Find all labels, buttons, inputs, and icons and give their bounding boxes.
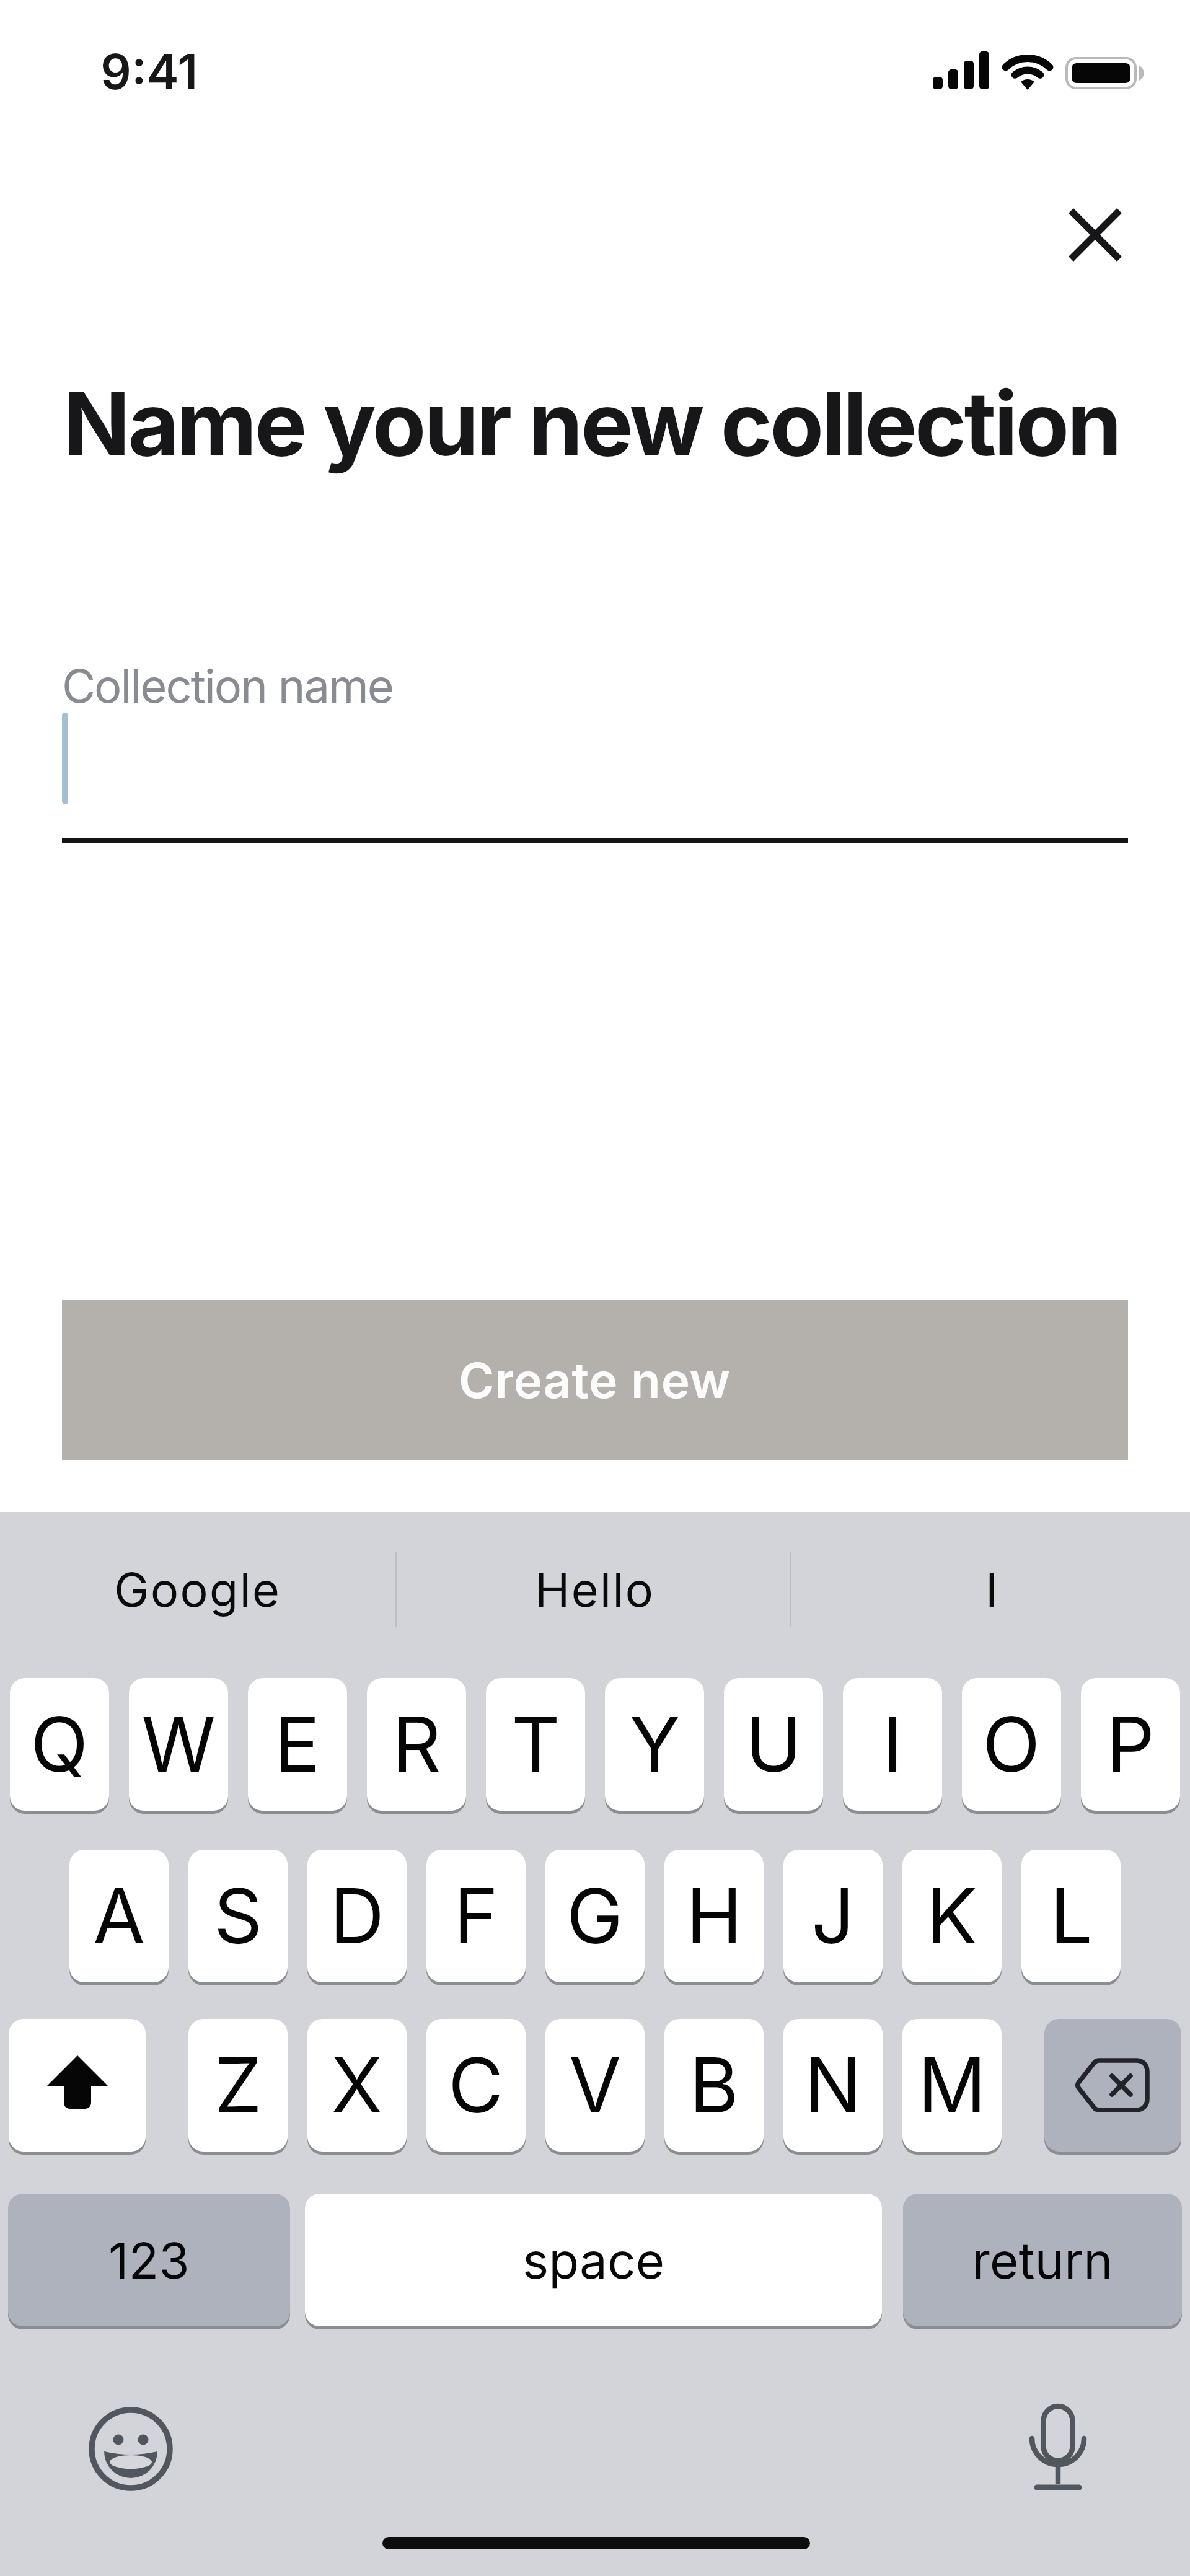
- staticText: 9:41: [100, 42, 198, 100]
- button[interactable]: F: [426, 1850, 526, 1982]
- staticText: W: [141, 1699, 216, 1790]
- staticText: D: [330, 1870, 385, 1962]
- button[interactable]: Hello: [397, 1512, 793, 1667]
- staticText: B: [689, 2039, 739, 2131]
- button[interactable]: H: [664, 1850, 764, 1982]
- staticText: 123: [108, 2230, 190, 2290]
- staticText: Name your new collection: [63, 370, 1120, 477]
- button[interactable]: I: [843, 1678, 942, 1811]
- button[interactable]: O: [962, 1678, 1061, 1811]
- staticText: U: [746, 1699, 802, 1790]
- button[interactable]: 123: [8, 2194, 290, 2326]
- staticText: space: [522, 2230, 665, 2290]
- staticText: H: [686, 1870, 743, 1962]
- staticText: A: [93, 1870, 146, 1962]
- button[interactable]: Q: [10, 1678, 109, 1811]
- button[interactable]: return: [903, 2194, 1182, 2326]
- button[interactable]: R: [367, 1678, 466, 1811]
- button[interactable]: P: [1081, 1678, 1180, 1811]
- button[interactable]: [1044, 2019, 1181, 2152]
- button[interactable]: K: [902, 1850, 1002, 1982]
- staticText: I: [985, 1561, 1000, 1618]
- button[interactable]: I: [795, 1512, 1190, 1667]
- button[interactable]: T: [486, 1678, 585, 1811]
- staticText: Collection name: [62, 658, 393, 714]
- button[interactable]: S: [188, 1850, 288, 1982]
- button[interactable]: G: [545, 1850, 645, 1982]
- button[interactable]: [1054, 193, 1137, 276]
- staticText: Y: [629, 1699, 681, 1790]
- staticText: return: [972, 2230, 1113, 2290]
- staticText: R: [392, 1699, 441, 1790]
- staticText: Z: [214, 2039, 262, 2131]
- staticText: Hello: [535, 1561, 655, 1618]
- button[interactable]: C: [426, 2019, 526, 2152]
- staticText: O: [982, 1699, 1041, 1790]
- button[interactable]: Z: [188, 2019, 288, 2152]
- staticText: K: [927, 1870, 977, 1962]
- staticText: F: [454, 1870, 499, 1962]
- staticText: J: [811, 1870, 855, 1962]
- staticText: M: [918, 2039, 987, 2131]
- staticText: T: [511, 1699, 560, 1790]
- staticText: G: [566, 1870, 624, 1962]
- button[interactable]: [56, 638, 1134, 849]
- staticText: L: [1050, 1870, 1093, 1962]
- staticText: V: [569, 2039, 622, 2131]
- staticText: X: [331, 2039, 383, 2131]
- button[interactable]: Y: [605, 1678, 704, 1811]
- button[interactable]: B: [664, 2019, 764, 2152]
- button[interactable]: space: [305, 2194, 882, 2326]
- button[interactable]: X: [307, 2019, 407, 2152]
- button[interactable]: Google: [0, 1512, 395, 1667]
- button[interactable]: M: [902, 2019, 1002, 2152]
- button[interactable]: D: [307, 1850, 407, 1982]
- button[interactable]: V: [545, 2019, 645, 2152]
- button[interactable]: U: [724, 1678, 823, 1811]
- button[interactable]: A: [69, 1850, 169, 1982]
- button[interactable]: W: [129, 1678, 228, 1811]
- staticText: N: [804, 2039, 862, 2131]
- button[interactable]: N: [783, 2019, 883, 2152]
- staticText: Create new: [459, 1351, 731, 1409]
- button[interactable]: E: [248, 1678, 347, 1811]
- staticText: C: [448, 2039, 504, 2131]
- button[interactable]: J: [783, 1850, 883, 1982]
- staticText: E: [275, 1699, 320, 1790]
- staticText: P: [1106, 1699, 1155, 1790]
- staticText: I: [883, 1699, 903, 1790]
- staticText: S: [214, 1870, 263, 1962]
- button[interactable]: [9, 2019, 146, 2152]
- button[interactable]: L: [1021, 1850, 1121, 1982]
- staticText: Q: [30, 1699, 89, 1790]
- button[interactable]: Create new: [62, 1300, 1128, 1460]
- button[interactable]: [1002, 2393, 1114, 2505]
- staticText: Google: [114, 1561, 281, 1618]
- button[interactable]: [75, 2393, 187, 2505]
